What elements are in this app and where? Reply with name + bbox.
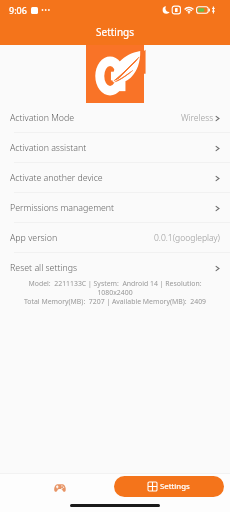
staticText: Activation Mode	[10, 112, 75, 124]
button[interactable]: Activation assistant	[0, 133, 230, 163]
staticText: Model: 2211133C | System: Android 14 | R…	[0, 279, 230, 306]
button[interactable]: App version	[0, 223, 230, 253]
staticText: Wireless	[181, 112, 214, 124]
staticText: 0.0.1(googleplay)	[154, 232, 220, 244]
staticText: Activation assistant	[10, 142, 87, 154]
staticText: Activate another device	[10, 172, 103, 184]
staticText: Permissions management	[10, 202, 115, 214]
staticText: Settings	[160, 481, 190, 492]
button[interactable]: Games	[46, 473, 74, 501]
staticText: App version	[10, 232, 58, 244]
staticText: 9:06	[9, 4, 27, 16]
button[interactable]: Reset all settings	[0, 253, 230, 283]
button[interactable]: Activate another device	[0, 163, 230, 193]
button[interactable]: Activation Mode	[0, 103, 230, 133]
button[interactable]: Permissions management	[0, 193, 230, 223]
staticText: Settings	[96, 25, 135, 39]
button[interactable]: Settings	[114, 476, 224, 497]
staticText: Reset all settings	[10, 262, 78, 274]
